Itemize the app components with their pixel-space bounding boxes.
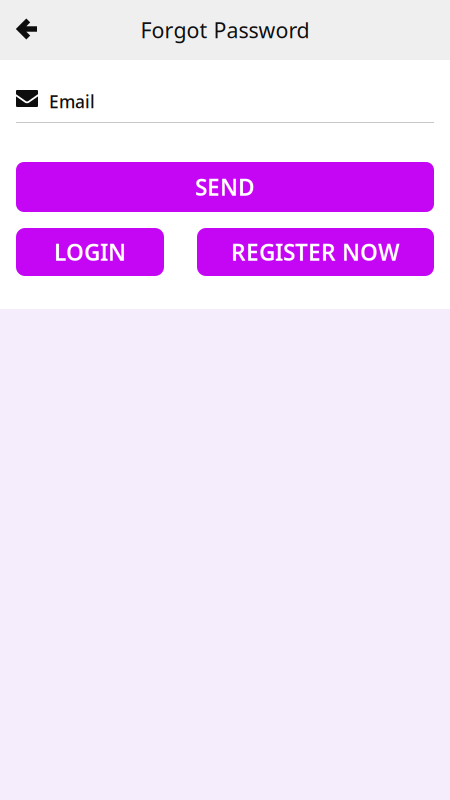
staticText: LOGIN bbox=[54, 237, 126, 267]
staticText: SEND bbox=[195, 172, 255, 202]
button[interactable]: SEND bbox=[16, 162, 434, 212]
staticText: Forgot Password bbox=[140, 16, 309, 44]
button[interactable]: LOGIN bbox=[16, 228, 164, 276]
staticText: REGISTER NOW bbox=[231, 237, 400, 267]
button[interactable]: REGISTER NOW bbox=[197, 228, 434, 276]
staticText: Email bbox=[49, 90, 95, 113]
button[interactable]: Back bbox=[0, 0, 54, 60]
